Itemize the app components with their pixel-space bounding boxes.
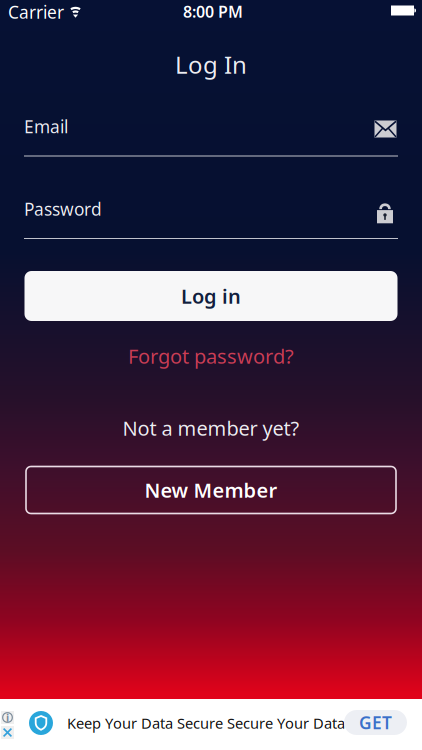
button[interactable]: Ad information xyxy=(1,711,14,724)
staticText: Forgot password? xyxy=(128,343,294,369)
staticText: Not a member yet? xyxy=(122,415,299,441)
staticText: Email xyxy=(24,115,68,138)
button[interactable]: New Member xyxy=(26,466,396,513)
staticText: i xyxy=(6,710,9,725)
button[interactable]: Close ad xyxy=(1,726,14,739)
staticText: 8:00 PM xyxy=(183,1,243,22)
staticText: GET xyxy=(359,711,392,734)
staticText: Carrier xyxy=(8,0,64,23)
staticText: Keep Your Data Secure Secure Your Data xyxy=(67,713,345,733)
button[interactable]: GET xyxy=(344,710,407,735)
button[interactable]: Forgot password? xyxy=(128,343,294,369)
button[interactable]: Advertised app xyxy=(29,711,53,735)
button[interactable]: Log in xyxy=(24,271,397,321)
staticText: Log In xyxy=(175,49,247,80)
staticText: Password xyxy=(24,197,102,220)
staticText: Log in xyxy=(181,283,241,309)
staticText: New Member xyxy=(144,477,277,503)
